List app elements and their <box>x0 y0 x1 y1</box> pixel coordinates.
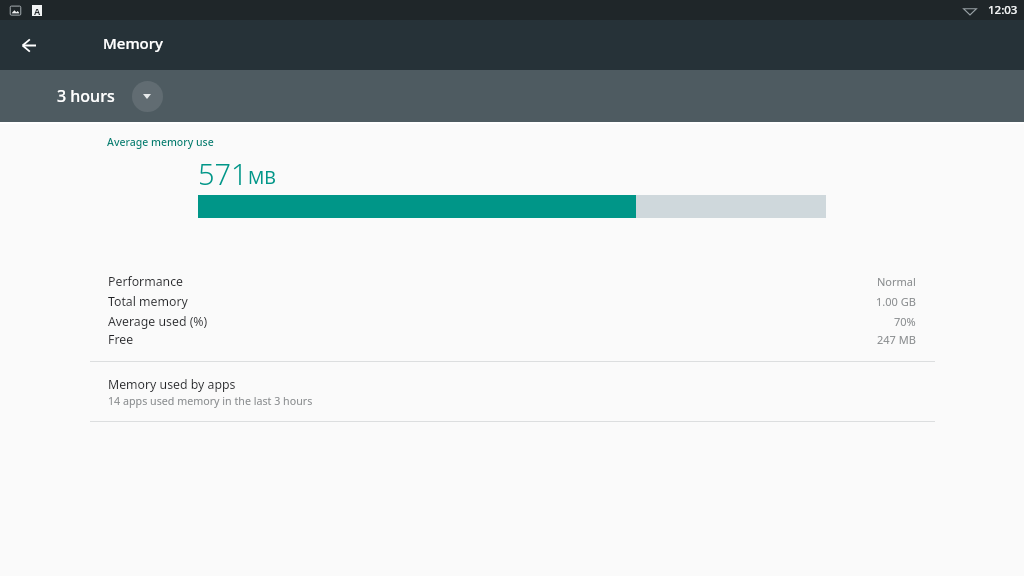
staticText: Memory <box>103 33 164 53</box>
staticText: Total memory <box>108 293 188 310</box>
staticText: 571 <box>198 154 248 193</box>
button[interactable]: Memory used by apps <box>0 362 1024 421</box>
staticText: 70% <box>894 314 916 329</box>
staticText: Free <box>108 331 134 348</box>
staticText: 3 hours <box>57 85 115 107</box>
staticText: 14 apps used memory in the last 3 hours <box>108 394 313 409</box>
staticText: 247 MB <box>877 332 916 347</box>
staticText: Memory used by apps <box>108 376 236 393</box>
button[interactable]: Navigate up <box>9 25 49 65</box>
staticText: Average used (%) <box>108 313 208 330</box>
staticText: Average memory use <box>107 135 214 149</box>
staticText: 1.00 GB <box>876 294 916 309</box>
staticText: Performance <box>108 273 184 290</box>
staticText: 12:03 <box>988 2 1018 18</box>
staticText: Normal <box>877 274 916 289</box>
button[interactable]: Time range: 3 hours <box>46 80 163 111</box>
staticText: MB <box>248 165 277 190</box>
staticText: A <box>34 5 41 16</box>
